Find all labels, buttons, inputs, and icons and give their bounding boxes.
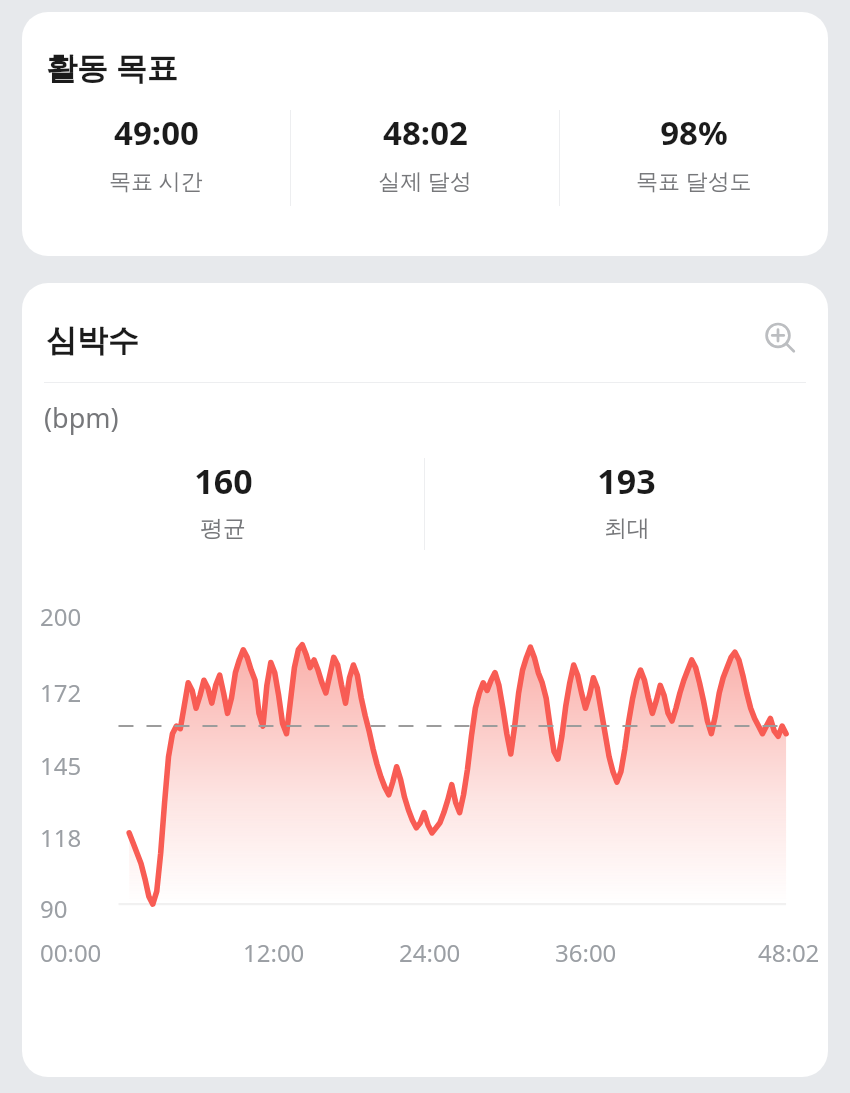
staticText: 98% [660, 110, 728, 155]
staticText: 실제 달성 [378, 165, 472, 195]
staticText: 200 [40, 600, 104, 633]
staticText: 12:00 [243, 936, 305, 969]
button[interactable]: 활동 목표 [22, 12, 828, 256]
staticText: 160 [194, 458, 253, 504]
staticText: 48:02 [383, 110, 468, 155]
staticText: (bpm) [44, 399, 119, 436]
staticText: 36:00 [555, 936, 617, 969]
staticText: 118 [40, 821, 104, 854]
staticText: 평균 [200, 514, 246, 543]
staticText: 00:00 [40, 936, 102, 969]
staticText: 172 [40, 676, 104, 709]
staticText: 최대 [604, 514, 650, 543]
button[interactable]: 심박수 자세히 보기 [758, 316, 806, 364]
staticText: 심박수 [46, 321, 758, 360]
staticText: 목표 시간 [109, 165, 203, 195]
staticText: 90 [40, 892, 104, 925]
staticText: 24:00 [399, 936, 461, 969]
staticText: 48:02 [758, 936, 820, 969]
staticText: 목표 달성도 [636, 165, 752, 195]
staticText: 193 [597, 458, 656, 504]
staticText: 활동 목표 [46, 46, 179, 88]
staticText: 49:00 [114, 110, 199, 155]
staticText: 145 [40, 749, 104, 782]
